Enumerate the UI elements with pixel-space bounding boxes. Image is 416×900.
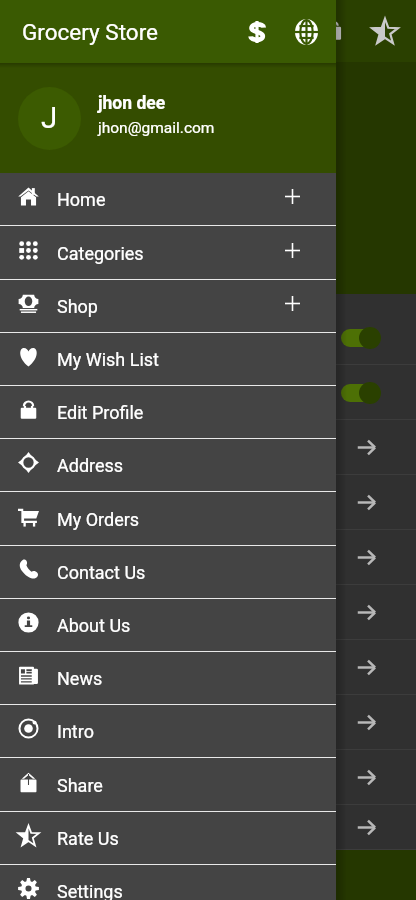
button[interactable]: Language	[284, 10, 328, 54]
button[interactable]: Rate us	[365, 11, 405, 51]
button[interactable]: My Wish List	[0, 333, 336, 386]
button[interactable]: Intro	[0, 705, 336, 758]
staticText: Share	[57, 775, 103, 796]
button[interactable]	[0, 365, 416, 420]
button[interactable]: Categories	[0, 226, 336, 280]
staticText: Home	[57, 189, 106, 210]
staticText: Edit Profile	[57, 402, 144, 423]
button[interactable]: My Orders	[0, 492, 336, 546]
button[interactable]	[0, 805, 416, 850]
button[interactable]	[0, 695, 416, 750]
button[interactable]: Edit Profile	[0, 386, 336, 439]
staticText: Intro	[57, 721, 94, 742]
staticText: Rate Us	[57, 828, 119, 849]
staticText: Shop	[57, 296, 98, 317]
button[interactable]: Shop	[0, 280, 336, 333]
staticText: Address	[57, 455, 124, 476]
staticText: J	[41, 101, 58, 136]
button[interactable]	[0, 310, 416, 365]
staticText: About Us	[57, 615, 131, 636]
staticText: jhon@gmail.com	[98, 119, 215, 137]
staticText: Settings	[57, 881, 123, 900]
button[interactable]	[0, 640, 416, 695]
staticText: Categories	[57, 243, 144, 264]
staticText: Contact Us	[57, 562, 146, 583]
button[interactable]	[0, 475, 416, 530]
staticText: My Wish List	[57, 349, 159, 370]
staticText: News	[57, 668, 103, 689]
button[interactable]: Shopping bag	[322, 19, 344, 41]
button[interactable]	[0, 420, 416, 475]
button[interactable]: Contact Us	[0, 546, 336, 599]
button[interactable]	[0, 530, 416, 585]
staticText: Grocery Store	[22, 19, 158, 45]
button[interactable]: Home	[0, 173, 336, 226]
button[interactable]: News	[0, 652, 336, 705]
staticText: My Orders	[57, 509, 140, 530]
button[interactable]: Address	[0, 439, 336, 492]
button[interactable]: Share	[0, 758, 336, 812]
button[interactable]	[0, 750, 416, 805]
button[interactable]: About Us	[0, 599, 336, 652]
button[interactable]: Rate Us	[0, 812, 336, 865]
button[interactable]	[0, 585, 416, 640]
button[interactable]: Currency	[234, 10, 278, 54]
button[interactable]: Settings	[0, 865, 336, 900]
staticText: jhon dee	[98, 93, 166, 114]
